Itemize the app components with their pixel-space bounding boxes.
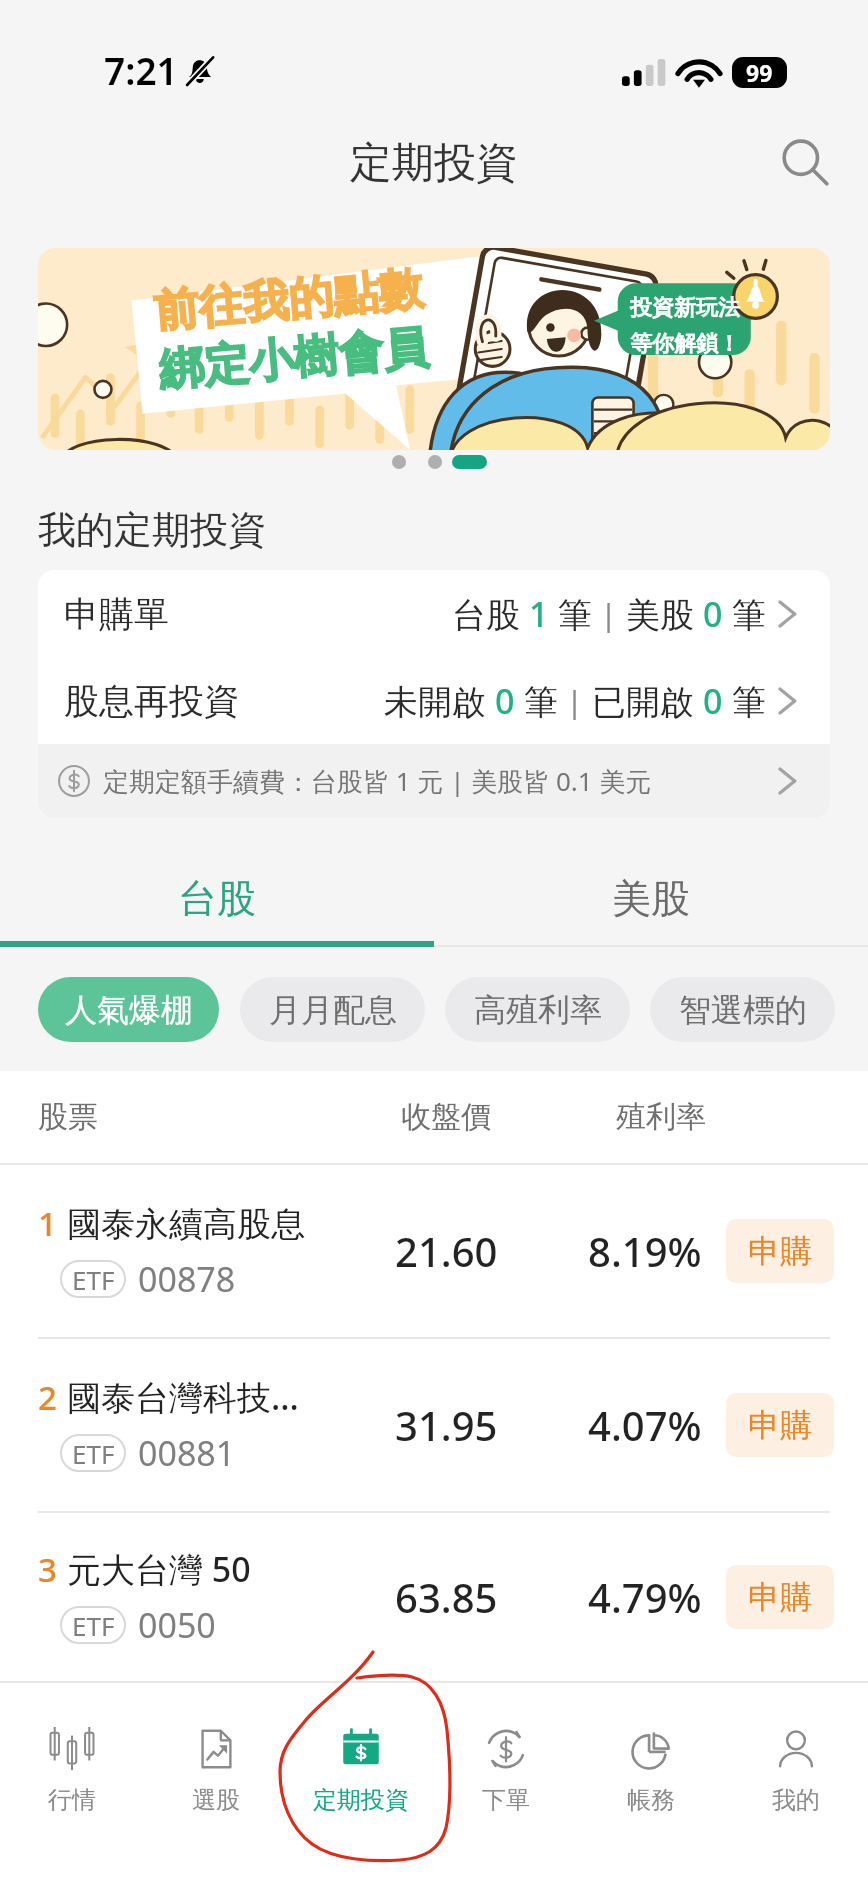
button[interactable]: Page 1 — [392, 455, 406, 469]
staticText: 筆 — [515, 678, 558, 724]
button[interactable]: 帳務 — [578, 1683, 723, 1887]
staticText: 筆 — [549, 591, 592, 637]
staticText: 行情 — [48, 1785, 96, 1815]
staticText: 人氣爆棚 — [65, 990, 193, 1030]
staticText: 國泰永續高股息 — [67, 1203, 305, 1246]
staticText: 投資新玩法 — [630, 294, 740, 322]
staticText: 1 — [38, 1201, 57, 1246]
staticText: ETF — [72, 1436, 115, 1471]
staticText: 殖利率 — [616, 1098, 706, 1136]
staticText: 選股 — [192, 1785, 240, 1815]
button[interactable]: 高殖利率 — [445, 977, 630, 1042]
button[interactable]: 1 — [0, 1165, 868, 1337]
button[interactable]: 下單 — [433, 1683, 578, 1887]
staticText: 筆 — [723, 678, 766, 724]
staticText: 已開啟 — [592, 678, 703, 724]
staticText: 申購 — [748, 1231, 812, 1271]
staticText: 99 — [746, 57, 773, 88]
staticText: 8.19% — [588, 1224, 702, 1278]
staticText: 31.95 — [395, 1398, 498, 1452]
staticText: 美股 — [612, 874, 690, 923]
staticText: 我的定期投資 — [38, 506, 266, 554]
staticText: 2 — [38, 1375, 57, 1420]
staticText: 0 — [495, 678, 515, 724]
staticText: 0 — [703, 591, 723, 637]
staticText: | — [592, 593, 626, 635]
staticText: 00878 — [138, 1256, 236, 1302]
staticText: 申購 — [748, 1577, 812, 1617]
staticText: 63.85 — [395, 1570, 498, 1624]
staticText: 股息再投資 — [64, 679, 239, 723]
staticText: 定期投資 — [350, 137, 518, 190]
button[interactable]: 定期定額手續費：台股皆 1 元 | 美股皆 0.1 美元 — [38, 744, 830, 818]
button[interactable]: 智選標的 — [650, 977, 835, 1042]
button[interactable]: 申購 — [726, 1393, 834, 1457]
button[interactable]: 台股 — [0, 844, 434, 941]
button[interactable]: 月月配息 — [240, 977, 425, 1042]
button[interactable]: 申購單 — [38, 570, 830, 657]
staticText: | — [558, 680, 592, 722]
button[interactable]: 2 — [0, 1339, 868, 1511]
staticText: 0050 — [138, 1602, 216, 1648]
staticText: 1 — [529, 591, 549, 637]
staticText: 3 — [38, 1547, 57, 1592]
button[interactable]: Page 3, selected — [452, 455, 487, 469]
staticText: 定期定額手續費：台股皆 1 元 | 美股皆 0.1 美元 — [103, 763, 652, 799]
button[interactable]: 前往我的點數 綁定小樹會員 — [38, 248, 830, 450]
staticText: 台股 — [452, 591, 529, 637]
staticText: 收盤價 — [401, 1098, 491, 1136]
staticText: 高殖利率 — [474, 990, 602, 1030]
staticText: 月月配息 — [269, 990, 397, 1030]
button[interactable]: 我的 — [723, 1683, 868, 1887]
button[interactable]: 3 — [0, 1513, 868, 1681]
staticText: 前往我的點數 — [151, 260, 425, 341]
button[interactable]: 美股 — [434, 844, 868, 941]
staticText: 未開啟 — [384, 678, 495, 724]
staticText: 帳務 — [627, 1785, 675, 1815]
staticText: 21.60 — [395, 1224, 498, 1278]
staticText: 申購 — [748, 1405, 812, 1445]
staticText: 智選標的 — [679, 990, 807, 1030]
button[interactable]: 選股 — [144, 1683, 288, 1887]
staticText: ETF — [72, 1608, 115, 1643]
staticText: 美股 — [626, 591, 703, 637]
button[interactable]: 定期投資 — [288, 1683, 433, 1887]
button[interactable]: 人氣爆棚 — [38, 977, 219, 1042]
staticText: 台股 — [178, 874, 256, 923]
staticText: 綁定小樹會員 — [157, 319, 430, 399]
staticText: 0 — [703, 678, 723, 724]
staticText: 國泰台灣科技... — [67, 1374, 299, 1420]
staticText: 我的 — [772, 1785, 820, 1815]
button[interactable]: Page 2 — [428, 455, 442, 469]
staticText: 等你解鎖！ — [630, 330, 740, 358]
button[interactable]: Search — [770, 128, 840, 198]
staticText: 00881 — [138, 1430, 236, 1476]
button[interactable]: 股息再投資 — [38, 657, 830, 744]
staticText: 股票 — [38, 1098, 98, 1136]
staticText: 7:21 — [104, 45, 178, 95]
staticText: 筆 — [723, 591, 766, 637]
staticText: 4.79% — [588, 1570, 702, 1624]
staticText: 元大台灣 50 — [67, 1546, 251, 1592]
staticText: 定期投資 — [313, 1785, 409, 1815]
staticText: 4.07% — [588, 1398, 702, 1452]
staticText: ETF — [72, 1262, 115, 1297]
staticText: 申購單 — [64, 592, 169, 636]
button[interactable]: 申購 — [726, 1219, 834, 1283]
staticText: 下單 — [482, 1785, 530, 1815]
button[interactable]: 行情 — [0, 1683, 144, 1887]
button[interactable]: 申購 — [726, 1565, 834, 1629]
